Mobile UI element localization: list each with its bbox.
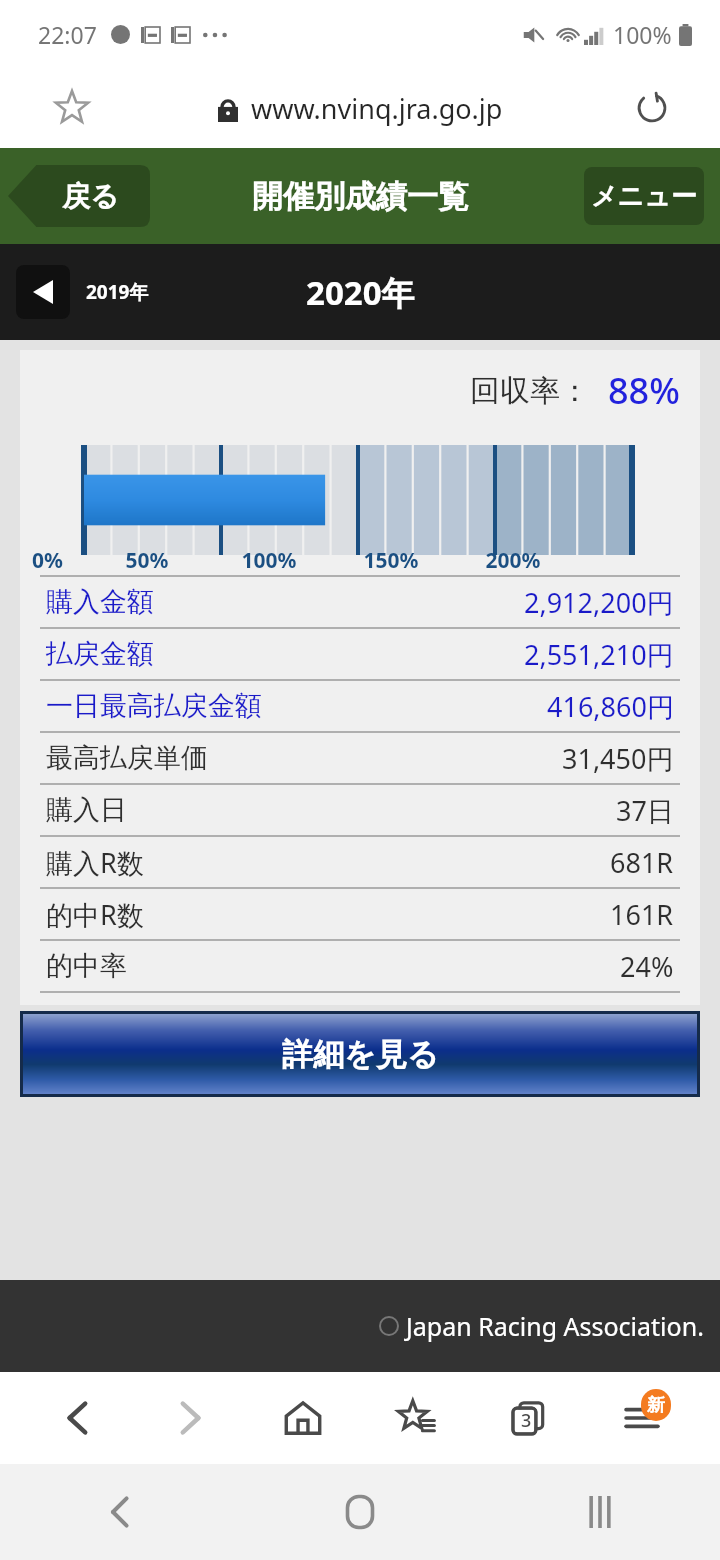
staticText: 24% [620,948,674,985]
staticText: 150% [330,546,452,575]
staticText: 681R [610,844,674,881]
staticText: 37日 [616,792,674,829]
staticText: 100% [208,546,330,575]
button[interactable]: 2019年 [16,265,149,319]
staticText: 31,450円 [562,740,674,777]
staticText: 的中R数 [46,896,144,933]
button[interactable]: Home [240,1464,480,1560]
button[interactable]: Forward [134,1372,246,1464]
button[interactable]: メニュー [584,167,704,225]
button[interactable]: 払戻金額 [46,629,674,679]
staticText: 100% [613,19,672,50]
staticText: 2020年 [306,270,415,315]
staticText: 2,551,210円 [524,636,674,673]
staticText: 2019年 [86,279,149,305]
staticText: 416,860円 [547,688,674,725]
staticText: 3 [521,1408,532,1433]
button[interactable]: 戻る [8,165,150,227]
staticText: 0% [32,546,86,575]
button[interactable]: Tabs [472,1372,585,1464]
button[interactable]: 一日最高払戻金額 [46,681,674,731]
staticText: 新 [647,1394,665,1417]
staticText: 一日最高払戻金額 [46,689,262,723]
staticText: 払戻金額 [46,637,154,671]
button[interactable]: Bookmark [48,84,96,132]
staticText: 2,912,200円 [524,584,674,621]
button[interactable]: Recent apps [480,1464,720,1560]
button[interactable]: Back [22,1372,134,1464]
button[interactable]: Back [0,1464,240,1560]
staticText: 50% [86,546,208,575]
staticText: 的中率 [46,949,127,983]
staticText: 詳細を見る [282,1035,439,1074]
button[interactable]: Menu [585,1372,698,1464]
button[interactable]: Bookmarks [359,1372,472,1464]
staticText: 開催別成績一覧 [252,177,469,216]
staticText: 購入R数 [46,844,144,881]
staticText: 200% [452,546,574,575]
staticText: 最高払戻単価 [46,741,208,775]
staticText: 購入金額 [46,585,154,619]
staticText: 88% [608,366,680,415]
button[interactable]: Reload [628,84,676,132]
staticText: メニュー [591,180,697,213]
staticText: 戻る [62,179,119,214]
button[interactable]: Home [246,1372,359,1464]
staticText: 購入日 [46,793,127,827]
staticText: 回収率： [470,372,590,410]
button[interactable]: 詳細を見る [20,1011,700,1097]
staticText: 22:07 [38,19,97,50]
button[interactable]: 購入金額 [46,577,674,627]
staticText: Japan Racing Association. [406,1309,704,1343]
staticText: www.nvinq.jra.go.jp [251,90,503,127]
staticText: 161R [610,896,674,933]
